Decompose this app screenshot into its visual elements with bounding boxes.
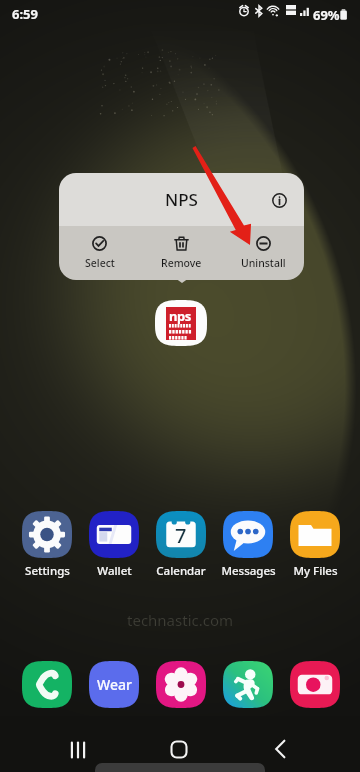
button[interactable]: Wear bbox=[89, 661, 139, 708]
staticText: Wallet bbox=[97, 563, 132, 579]
staticText: Messages bbox=[221, 563, 276, 579]
staticText: Settings bbox=[25, 563, 70, 579]
button[interactable]: My Files bbox=[282, 511, 348, 579]
staticText: Remove bbox=[161, 256, 202, 270]
button[interactable]: Messages bbox=[215, 511, 281, 579]
staticText: My Files bbox=[293, 563, 338, 579]
staticText: Uninstall bbox=[241, 256, 286, 270]
staticText: 7 bbox=[175, 522, 187, 549]
button[interactable]: Recents bbox=[56, 729, 100, 769]
button[interactable]: Back bbox=[258, 729, 302, 769]
button[interactable]: 7 bbox=[148, 511, 214, 579]
staticText: Wear bbox=[97, 675, 132, 694]
button[interactable]: Wallet bbox=[81, 511, 147, 579]
button[interactable]: Camera bbox=[290, 661, 340, 708]
staticText: NPS bbox=[165, 188, 198, 211]
button[interactable]: App info bbox=[266, 187, 292, 213]
staticText: Select bbox=[85, 256, 115, 270]
staticText: nps bbox=[169, 307, 191, 325]
button[interactable]: Remove bbox=[140, 236, 222, 270]
button[interactable]: NPS app bbox=[155, 300, 207, 346]
staticText: 69% bbox=[313, 6, 340, 24]
staticText: Calendar bbox=[156, 563, 206, 579]
button[interactable]: Phone bbox=[22, 661, 72, 708]
button[interactable]: Uninstall bbox=[222, 236, 304, 270]
staticText: 6:59 bbox=[12, 5, 38, 23]
button[interactable]: Settings bbox=[14, 511, 80, 579]
staticText: technastic.com bbox=[127, 610, 234, 630]
button[interactable]: Select bbox=[59, 236, 140, 270]
button[interactable]: Gallery bbox=[156, 661, 206, 708]
button[interactable]: Health bbox=[223, 661, 273, 708]
button[interactable]: Home bbox=[157, 729, 201, 769]
